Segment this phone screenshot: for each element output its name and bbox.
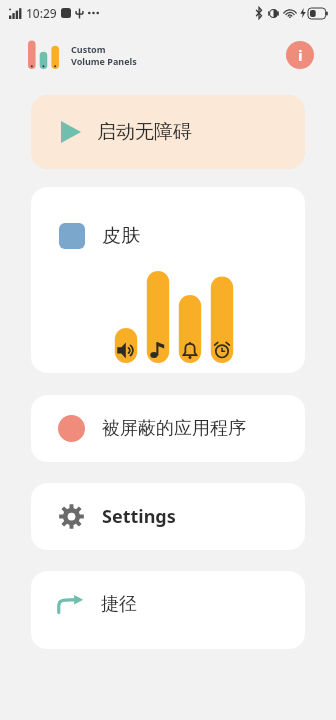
staticText: i [298,45,303,65]
button[interactable]: 皮肤 [31,187,305,373]
staticText: 捷径 [101,593,137,616]
button[interactable]: 捷径 [31,571,305,649]
button[interactable]: 启动无障碍 [31,95,305,169]
staticText: 皮肤 [102,224,140,248]
button[interactable]: Info [286,41,314,69]
staticText: 启动无障碍 [97,120,192,144]
button[interactable]: 被屏蔽的应用程序 [31,395,305,462]
staticText: Settings [102,504,176,529]
staticText: Custom [71,43,106,55]
staticText: 被屏蔽的应用程序 [102,417,246,440]
button[interactable]: Settings [31,483,305,550]
staticText: Volume Panels [71,55,137,67]
staticText: 10:29 [26,5,57,21]
